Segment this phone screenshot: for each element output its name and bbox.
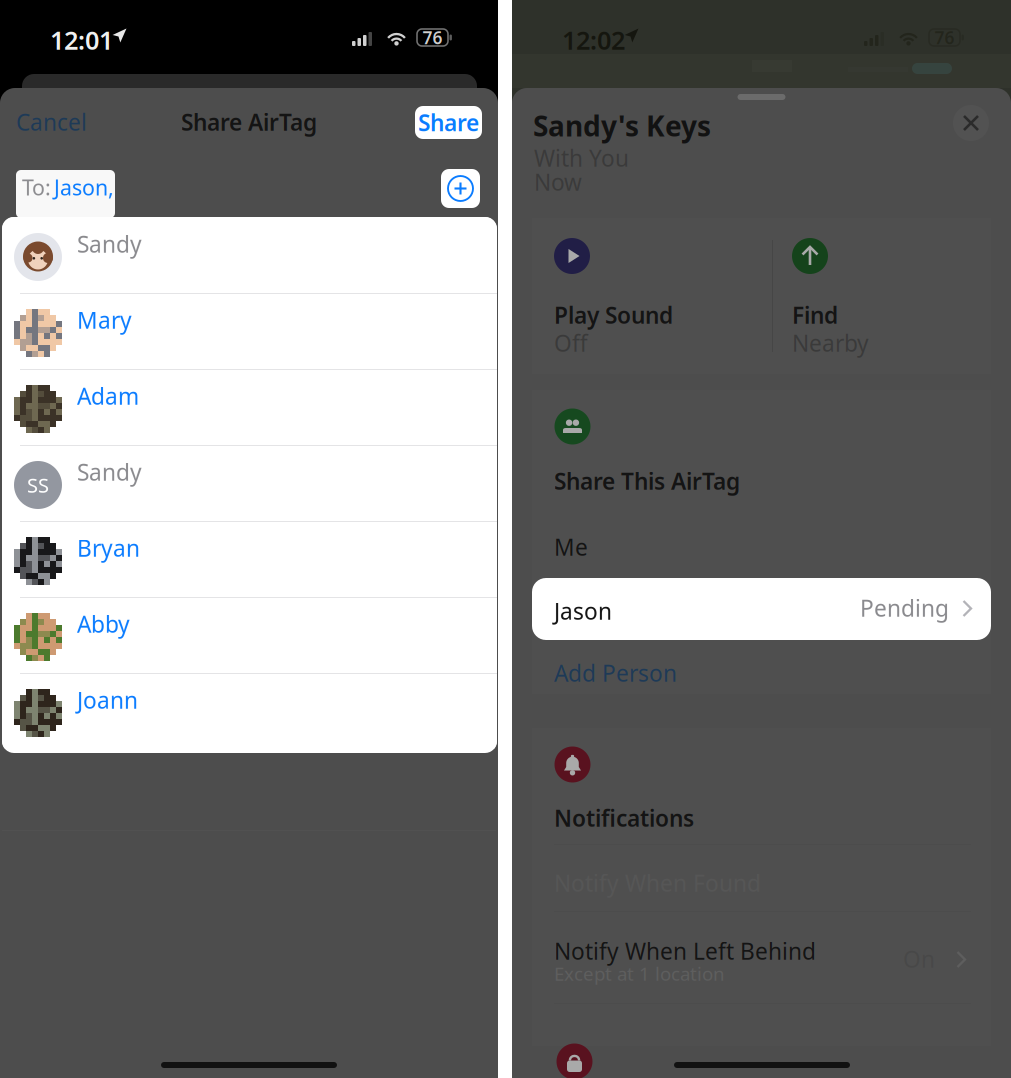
button[interactable]: Bryan <box>2 521 497 597</box>
button[interactable]: Close <box>953 105 989 141</box>
button[interactable]: Play Sound <box>554 238 729 362</box>
staticText: Sandy's Keys <box>533 107 711 144</box>
button[interactable]: Mary <box>2 293 497 369</box>
button[interactable]: Joann <box>2 673 497 749</box>
staticText: Notifications <box>554 803 694 833</box>
staticText: 12:01 <box>50 23 113 57</box>
button[interactable]: Cancel <box>16 105 92 139</box>
button[interactable]: Jason <box>532 578 991 640</box>
staticText: 12:02 <box>562 23 625 57</box>
staticText: Pending <box>860 593 949 623</box>
staticText: With You <box>534 143 629 173</box>
staticText: Add Person <box>554 658 677 688</box>
button[interactable]: Notify When Left Behind <box>554 936 971 988</box>
staticText: Joann <box>77 685 138 715</box>
staticText: 76 <box>422 26 442 49</box>
staticText: Now <box>534 167 582 197</box>
staticText: Share This AirTag <box>554 466 740 496</box>
staticText: Cancel <box>16 107 87 137</box>
button[interactable]: Add Person <box>554 660 754 686</box>
button[interactable]: Adam <box>2 369 497 445</box>
button[interactable]: Share <box>415 106 482 139</box>
button[interactable]: SS <box>2 445 497 521</box>
button[interactable]: Sandy <box>2 217 497 293</box>
staticText: Mary <box>77 305 132 335</box>
staticText: Jason <box>554 596 612 626</box>
staticText: 76 <box>934 26 954 49</box>
staticText: Sandy <box>77 457 142 487</box>
button[interactable]: Add Contact <box>441 169 480 208</box>
staticText: Find <box>792 300 838 330</box>
staticText: Nearby <box>792 328 869 358</box>
staticText: Me <box>554 532 588 562</box>
staticText: To: <box>22 173 51 201</box>
staticText: Off <box>554 328 588 358</box>
staticText: Notify When Left Behind <box>554 936 816 966</box>
staticText: Sandy <box>77 229 142 259</box>
staticText: Adam <box>77 381 139 411</box>
staticText: Play Sound <box>554 300 673 330</box>
staticText: Bryan <box>77 533 140 563</box>
staticText: SS <box>27 472 49 498</box>
button[interactable]: Abby <box>2 597 497 673</box>
button[interactable]: Find <box>792 238 967 362</box>
staticText: Share AirTag <box>181 107 317 137</box>
staticText: Jason, <box>54 173 114 201</box>
staticText: Share <box>418 107 479 137</box>
staticText: Abby <box>77 609 130 639</box>
staticText: Except at 1 location <box>554 961 725 986</box>
